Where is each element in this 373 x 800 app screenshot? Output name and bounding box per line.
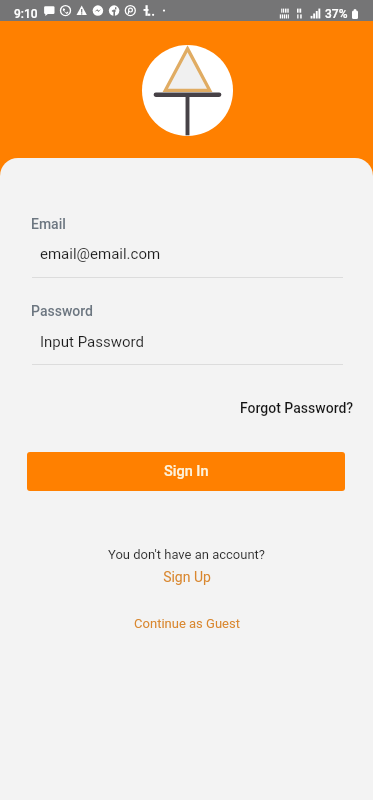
staticText: Email [31,216,66,232]
staticText: 9:10 [14,7,38,21]
staticText: Forgot Password? [240,400,354,416]
staticText: email@email.com [40,245,161,263]
button[interactable]: Forgot Password? [240,400,354,416]
staticText: Continue as Guest [134,616,240,631]
button[interactable]: Sign In [27,452,345,491]
staticText: 37% [325,7,348,21]
staticText: Input Password [40,333,144,351]
staticText: You don't have an account? [108,547,265,562]
staticText: Sign Up [163,569,211,585]
button[interactable]: Sign Up [163,569,211,585]
staticText: Password [31,303,94,319]
staticText: Sign In [164,463,209,480]
button[interactable]: Continue as Guest [134,616,240,631]
